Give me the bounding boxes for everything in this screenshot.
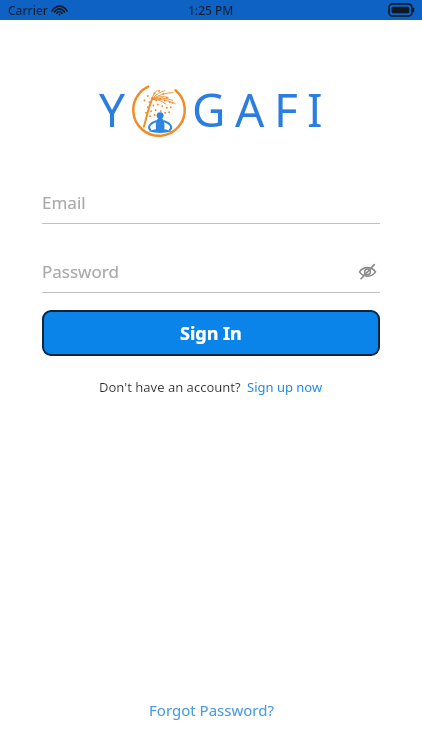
- staticText: 1:25 PM: [188, 2, 234, 18]
- button[interactable]: Sign up now: [247, 378, 323, 396]
- staticText: Don't have an account?: [99, 378, 241, 396]
- staticText: G: [192, 78, 226, 141]
- staticText: Forgot Password?: [149, 700, 274, 720]
- staticText: Sign up now: [247, 378, 323, 396]
- staticText: Y: [99, 78, 126, 141]
- staticText: A: [235, 78, 265, 141]
- staticText: Carrier: [8, 2, 48, 18]
- button[interactable]: Password: [42, 258, 380, 293]
- staticText: I: [307, 78, 323, 141]
- button[interactable]: Email: [42, 189, 380, 224]
- staticText: Email: [42, 191, 86, 214]
- button[interactable]: Show password: [354, 258, 380, 284]
- staticText: Sign In: [180, 321, 242, 346]
- staticText: F: [274, 78, 298, 141]
- button[interactable]: Sign In: [42, 310, 380, 356]
- staticText: Password: [42, 260, 119, 283]
- button[interactable]: Forgot Password?: [141, 692, 282, 728]
